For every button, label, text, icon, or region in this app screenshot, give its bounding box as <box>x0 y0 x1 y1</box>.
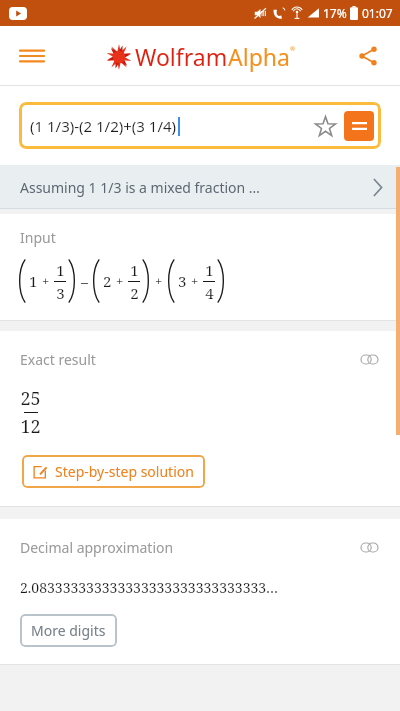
button[interactable]: More digits <box>20 614 117 647</box>
staticText: + <box>116 272 124 290</box>
staticText: 2.083333333333333333333333333333… <box>20 578 279 597</box>
staticText: ® <box>290 45 295 53</box>
staticText: Step-by-step solution <box>55 462 194 481</box>
staticText: Decimal approximation <box>20 538 174 557</box>
button[interactable]: (1 1/3)-(2 1/2)+(3 1/4) <box>19 102 381 149</box>
staticText: + <box>42 272 50 290</box>
staticText: (1 1/3)-(2 1/2)+(3 1/4) <box>30 116 177 136</box>
staticText: 3 <box>56 283 65 303</box>
button[interactable]: Favorite <box>308 109 342 143</box>
staticText: 4 <box>205 283 214 303</box>
staticText: 12 <box>20 414 41 439</box>
staticText: 1 <box>130 260 139 280</box>
staticText: 25 <box>20 386 41 411</box>
staticText: Input <box>20 228 56 247</box>
button[interactable]: Menu <box>8 32 56 80</box>
staticText: Exact result <box>20 350 96 369</box>
staticText: 1 <box>56 260 65 280</box>
staticText: 2 <box>103 271 112 291</box>
staticText: – <box>81 272 88 291</box>
button[interactable]: Share <box>344 32 392 80</box>
staticText: 1 <box>29 271 38 291</box>
staticText: 01:07 <box>362 5 393 21</box>
staticText: 2 <box>130 283 139 303</box>
staticText: 1 <box>205 260 214 280</box>
staticText: 3 <box>178 271 187 291</box>
staticText: Assuming 1 1/3 is a mixed fraction … <box>20 178 260 197</box>
staticText: + <box>155 272 163 290</box>
button[interactable]: Copy link <box>356 346 382 372</box>
button[interactable]: Copy link <box>356 534 382 560</box>
staticText: + <box>191 272 199 290</box>
button[interactable]: Assuming 1 1/3 is a mixed fraction … <box>0 165 400 209</box>
staticText: Alpha <box>228 41 290 72</box>
button[interactable]: Compute <box>344 111 374 141</box>
staticText: More digits <box>31 621 106 640</box>
staticText: Wolfram <box>135 41 228 72</box>
button[interactable]: Step-by-step solution <box>22 455 205 488</box>
staticText: 17% <box>323 5 347 21</box>
